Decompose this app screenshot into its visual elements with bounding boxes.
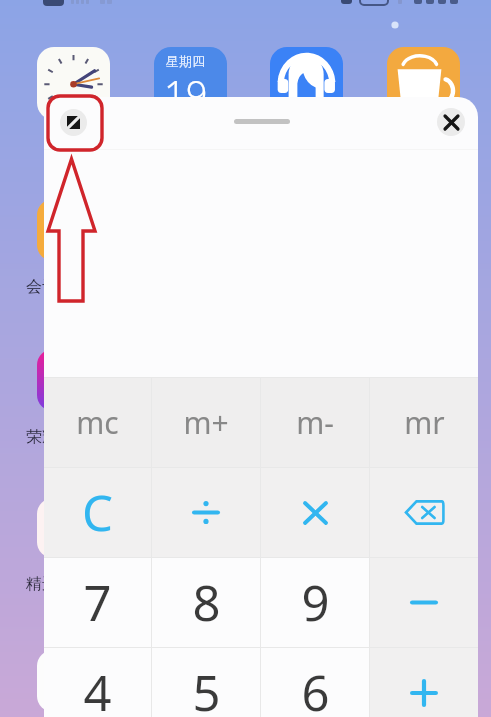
button[interactable]: C [44, 468, 151, 557]
button[interactable]: Delete [370, 468, 478, 557]
staticText: 7 [83, 569, 112, 636]
button[interactable]: m+ [152, 378, 260, 467]
button[interactable]: Multiply [261, 468, 369, 557]
button[interactable]: m- [261, 378, 369, 467]
staticText: C [82, 479, 113, 546]
staticText: 8 [192, 569, 221, 636]
staticText: 6 [301, 659, 330, 717]
other: Multiply [303, 501, 328, 525]
button[interactable]: Close [437, 108, 465, 136]
button[interactable]: mc [44, 378, 151, 467]
staticText: m+ [183, 402, 229, 443]
button[interactable]: 7 [44, 558, 151, 647]
button[interactable]: App [37, 349, 99, 411]
other: Minus [410, 600, 438, 605]
button[interactable]: Minus [370, 558, 478, 647]
staticText: 精选 [26, 574, 58, 594]
staticText: 会计 [26, 277, 58, 297]
staticText: 19 [164, 68, 208, 119]
other: Divide [192, 501, 220, 524]
staticText: 9 [301, 569, 330, 636]
other: Delete [405, 500, 444, 525]
button[interactable]: Resize window [60, 109, 87, 136]
staticText: 星期四 [166, 53, 205, 69]
button[interactable]: 9 [261, 558, 369, 647]
staticText: m- [296, 402, 334, 443]
button[interactable]: Divide [152, 468, 260, 557]
button[interactable]: App [37, 650, 99, 712]
button[interactable]: 8 [152, 558, 260, 647]
staticText: mr [404, 402, 445, 443]
button[interactable]: 4 [44, 648, 151, 717]
other: Plus [410, 679, 438, 707]
button[interactable]: 6 [261, 648, 369, 717]
staticText: 4 [83, 659, 112, 717]
staticText: 5 [192, 659, 221, 717]
staticText: mc [76, 402, 119, 443]
button[interactable]: 5 [152, 648, 260, 717]
button[interactable]: mr [370, 378, 478, 467]
staticText: 荣耀 [26, 427, 58, 447]
button[interactable]: App [37, 498, 97, 558]
button[interactable]: Plus [370, 648, 478, 717]
button[interactable]: App [37, 199, 99, 261]
